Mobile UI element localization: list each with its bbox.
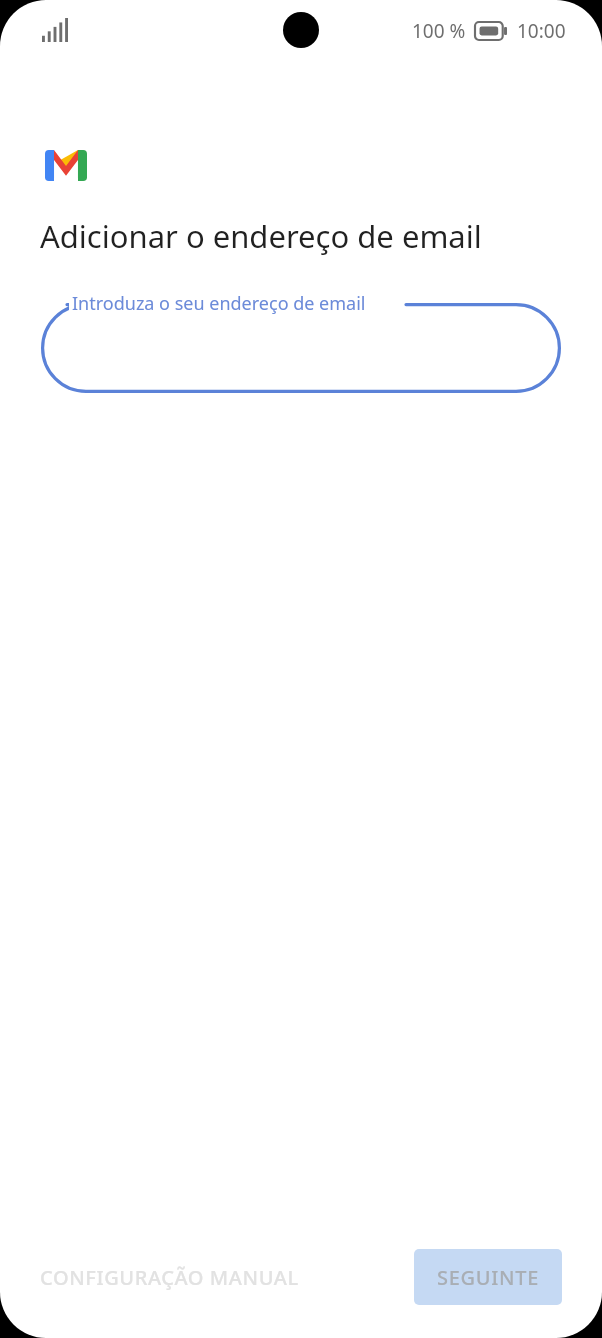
button[interactable]: Introduza o seu endereço de email [41, 291, 561, 393]
staticText: 10:00 [517, 18, 566, 44]
staticText: Introduza o seu endereço de email [72, 291, 366, 316]
button[interactable]: SEGUINTE [414, 1249, 562, 1305]
staticText: CONFIGURAÇÃO MANUAL [40, 1264, 299, 1291]
staticText: Adicionar o endereço de email [40, 215, 482, 257]
staticText: SEGUINTE [437, 1264, 540, 1291]
staticText: 100 % [412, 18, 466, 44]
button[interactable]: CONFIGURAÇÃO MANUAL [38, 1252, 301, 1303]
